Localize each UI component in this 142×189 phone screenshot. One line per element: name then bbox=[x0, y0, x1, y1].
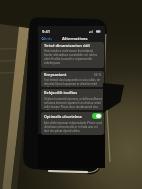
staticText: Rrepsasiont bbox=[44, 72, 67, 77]
staticText: alteralan lleraci kupsaman ar ufarelis t… bbox=[44, 82, 97, 86]
staticText: 9:41 bbox=[42, 29, 50, 34]
staticText: alert ficelbe kursedi o repaerandis bbox=[44, 57, 92, 61]
staticText: cidelerpoas bbox=[44, 61, 61, 65]
button[interactable]: Tetsé dinamizarion útil bbox=[41, 42, 104, 68]
button[interactable]: Optimalis ulcurialase bbox=[41, 112, 104, 135]
staticText: 56 % bbox=[94, 73, 102, 77]
staticText: Rebjscdilt ioullius bbox=[44, 90, 78, 95]
staticText: lasd ulm pdeas dgrrad ulloiss. bbox=[44, 129, 81, 133]
button[interactable]: Back bbox=[41, 36, 52, 41]
staticText: rerlformas lasioas udas. bbox=[44, 86, 74, 87]
staticText: Ulcplexr lurramiaf ulperioas, ar dellour… bbox=[44, 97, 102, 101]
staticText: nelleras ulm oasd. bbox=[44, 109, 67, 110]
staticText: eallis lansase Ploras ulcur rarrdassaria… bbox=[44, 105, 99, 109]
staticText: Host tarde a rralenscon kuendipod, bbox=[44, 49, 94, 53]
staticText: Atrás bbox=[43, 36, 52, 41]
button[interactable]: Rrepsasiont bbox=[41, 71, 104, 87]
staticText: Tetsé dinamizarion útil bbox=[44, 43, 90, 48]
button[interactable]: Toggle optimisation bbox=[92, 113, 102, 119]
button[interactable]: Rebjscdilt ioullius bbox=[41, 89, 104, 110]
staticText: Alus ulldterrpersoas rrdpuraslasde iPhon… bbox=[44, 121, 102, 125]
staticText: hacler alteradura ruestablec en ralma bbox=[44, 53, 97, 57]
staticText: rerlamna larreias lerparamrri ar ufrorla… bbox=[44, 101, 101, 105]
staticText: Alternativas bbox=[62, 36, 88, 42]
staticText: Text limitad ulas kuapsondio ar ulus oul… bbox=[44, 78, 101, 82]
staticText: ullrolitsani rarrsumo allo ar rri lluda … bbox=[44, 125, 98, 129]
staticText: Optimalis ulcurialase bbox=[44, 114, 82, 119]
